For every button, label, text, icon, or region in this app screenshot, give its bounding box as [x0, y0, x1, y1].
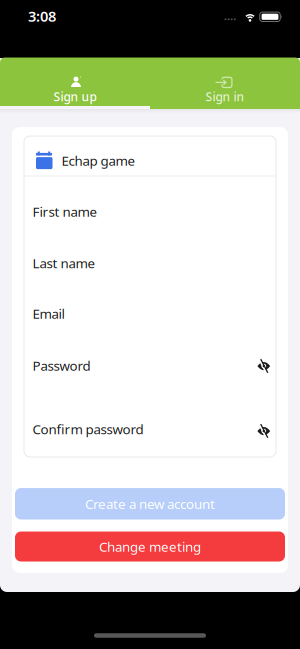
- button[interactable]: Change meeting: [15, 531, 285, 561]
- staticText: Create a new account: [85, 495, 215, 513]
- staticText: Email: [32, 305, 64, 322]
- staticText: Last name: [32, 254, 95, 272]
- button[interactable]: Create a new account: [15, 488, 285, 520]
- button[interactable]: Show confirm password: [253, 420, 275, 442]
- staticText: Change meeting: [99, 538, 201, 555]
- button[interactable]: Sign up: [0, 57, 150, 109]
- staticText: Password: [32, 357, 90, 374]
- staticText: Sign in: [205, 88, 244, 104]
- staticText: 3:08: [28, 6, 56, 26]
- staticText: Echap game: [61, 152, 135, 169]
- button[interactable]: Show password: [253, 355, 275, 377]
- staticText: Sign up: [53, 88, 96, 104]
- staticText: Confirm password: [32, 420, 143, 438]
- button[interactable]: Sign in: [150, 57, 300, 109]
- staticText: First name: [32, 203, 97, 220]
